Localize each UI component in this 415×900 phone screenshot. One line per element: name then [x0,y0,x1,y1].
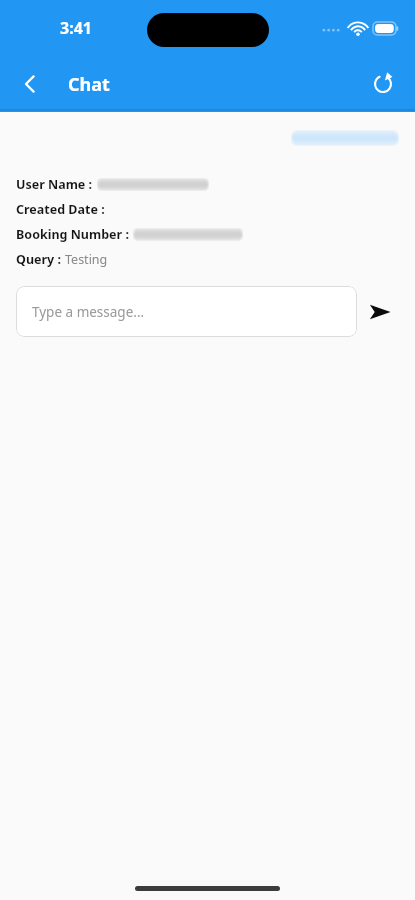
staticText: Booking Number : [16,226,129,243]
button[interactable]: Type a message... [16,286,357,337]
staticText: Type a message... [32,303,145,321]
staticText: Testing [65,251,108,268]
staticText: User Name : [16,176,93,193]
staticText: Created Date : [16,201,105,218]
staticText: Chat [68,72,110,97]
button[interactable]: Send [357,289,403,335]
button[interactable]: Back [8,62,52,106]
staticText: Query : [16,251,61,268]
button[interactable]: Refresh [361,62,405,106]
staticText: 3:41 [60,17,92,39]
